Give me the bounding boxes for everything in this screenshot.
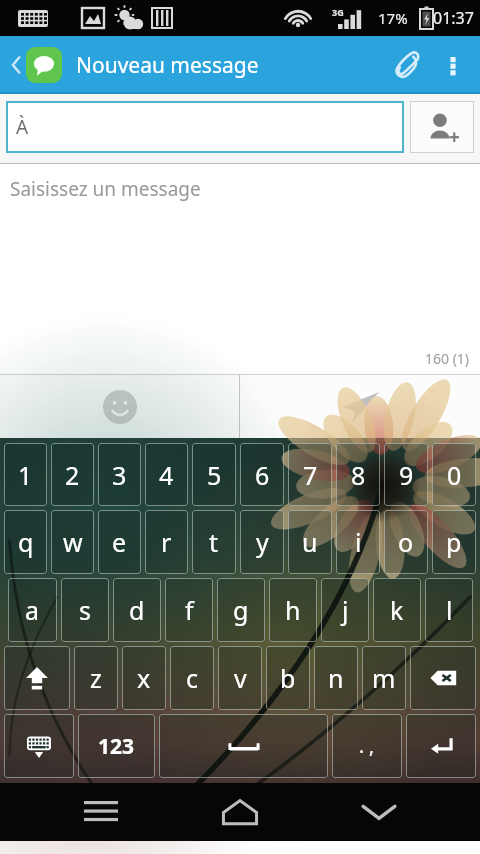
button[interactable]: g <box>217 578 265 642</box>
staticText: 9 <box>399 458 414 492</box>
staticText: 5 <box>207 458 222 492</box>
button[interactable]: c <box>170 646 214 710</box>
button[interactable]: u <box>288 510 332 574</box>
staticText: e <box>112 525 127 559</box>
staticText: l <box>446 593 453 627</box>
button[interactable]: d <box>113 578 161 642</box>
button[interactable]: h <box>269 578 317 642</box>
button[interactable]: w <box>51 510 94 574</box>
staticText: Nouveau message <box>76 51 259 80</box>
button[interactable]: Enter <box>406 714 476 778</box>
staticText: q <box>18 525 34 559</box>
staticText: 6 <box>255 458 270 492</box>
button[interactable]: o <box>384 510 428 574</box>
staticText: s <box>79 593 91 627</box>
staticText: c <box>186 661 199 695</box>
staticText: f <box>185 593 194 627</box>
button[interactable]: y <box>240 510 284 574</box>
staticText: w <box>63 525 83 559</box>
button[interactable]: b <box>266 646 310 710</box>
staticText: 17% <box>378 8 408 28</box>
staticText: z <box>90 661 102 695</box>
button[interactable]: p <box>432 510 476 574</box>
staticText: 8 <box>351 458 366 492</box>
staticText: 160 (1) <box>425 349 470 368</box>
staticText: À <box>16 114 29 140</box>
button[interactable]: Space <box>159 714 328 778</box>
staticText: 3 <box>112 458 127 492</box>
button[interactable]: Emoji <box>0 375 239 438</box>
button[interactable]: Back <box>6 41 66 89</box>
button[interactable]: Send <box>240 375 480 438</box>
staticText: j <box>342 593 349 627</box>
button[interactable]: Hide keyboard <box>4 714 74 778</box>
button[interactable]: 9 <box>384 443 428 506</box>
button[interactable]: a <box>8 578 57 642</box>
button[interactable]: 4 <box>145 443 188 506</box>
staticText: x <box>137 661 151 695</box>
button[interactable]: 1 <box>4 443 47 506</box>
button[interactable]: 2 <box>51 443 94 506</box>
button[interactable]: Shift <box>4 646 70 710</box>
button[interactable]: x <box>122 646 166 710</box>
button[interactable]: l <box>425 578 473 642</box>
button[interactable]: 3 <box>98 443 141 506</box>
button[interactable]: i <box>336 510 380 574</box>
button[interactable]: s <box>61 578 109 642</box>
staticText: t <box>209 525 219 559</box>
button[interactable]: v <box>218 646 262 710</box>
button[interactable]: More options <box>436 48 470 82</box>
button[interactable]: 0 <box>432 443 476 506</box>
staticText: o <box>398 525 414 559</box>
button[interactable]: Add contact <box>410 101 474 153</box>
staticText: Saisissez un message <box>10 176 201 202</box>
button[interactable]: . , <box>332 714 402 778</box>
staticText: i <box>355 525 362 559</box>
button[interactable]: Menu <box>63 786 139 838</box>
staticText: 1 <box>18 458 33 492</box>
staticText: 0 <box>447 458 462 492</box>
staticText: h <box>285 593 301 627</box>
staticText: g <box>233 593 249 627</box>
button[interactable]: Home <box>202 786 278 838</box>
button[interactable]: t <box>192 510 236 574</box>
staticText: 7 <box>303 458 318 492</box>
button[interactable]: 123 <box>78 714 155 778</box>
staticText: k <box>390 593 404 627</box>
staticText: 123 <box>98 732 135 761</box>
button[interactable]: f <box>165 578 213 642</box>
staticText: y <box>256 525 269 559</box>
staticText: d <box>129 593 145 627</box>
button[interactable]: Saisissez un message <box>0 164 480 374</box>
button[interactable]: À <box>6 101 404 153</box>
staticText: 2 <box>65 458 80 492</box>
staticText: 01:37 <box>433 7 474 29</box>
staticText: m <box>372 661 396 695</box>
button[interactable]: r <box>145 510 188 574</box>
staticText: v <box>234 661 247 695</box>
button[interactable]: e <box>98 510 141 574</box>
button[interactable]: n <box>314 646 358 710</box>
button[interactable]: Back <box>341 786 417 838</box>
staticText: b <box>280 661 296 695</box>
button[interactable]: 5 <box>192 443 236 506</box>
button[interactable]: 7 <box>288 443 332 506</box>
button[interactable]: q <box>4 510 47 574</box>
button[interactable]: 6 <box>240 443 284 506</box>
staticText: 3G <box>332 6 344 18</box>
staticText: . , <box>359 733 375 759</box>
button[interactable]: k <box>373 578 421 642</box>
button[interactable]: j <box>321 578 369 642</box>
staticText: 4 <box>159 458 174 492</box>
staticText: u <box>302 525 318 559</box>
staticText: p <box>446 525 462 559</box>
staticText: r <box>161 525 172 559</box>
button[interactable]: Delete <box>410 646 476 710</box>
staticText: n <box>328 661 344 695</box>
button[interactable]: Attach <box>384 43 428 87</box>
staticText: a <box>25 593 40 627</box>
button[interactable]: z <box>74 646 118 710</box>
button[interactable]: 8 <box>336 443 380 506</box>
button[interactable]: m <box>362 646 406 710</box>
